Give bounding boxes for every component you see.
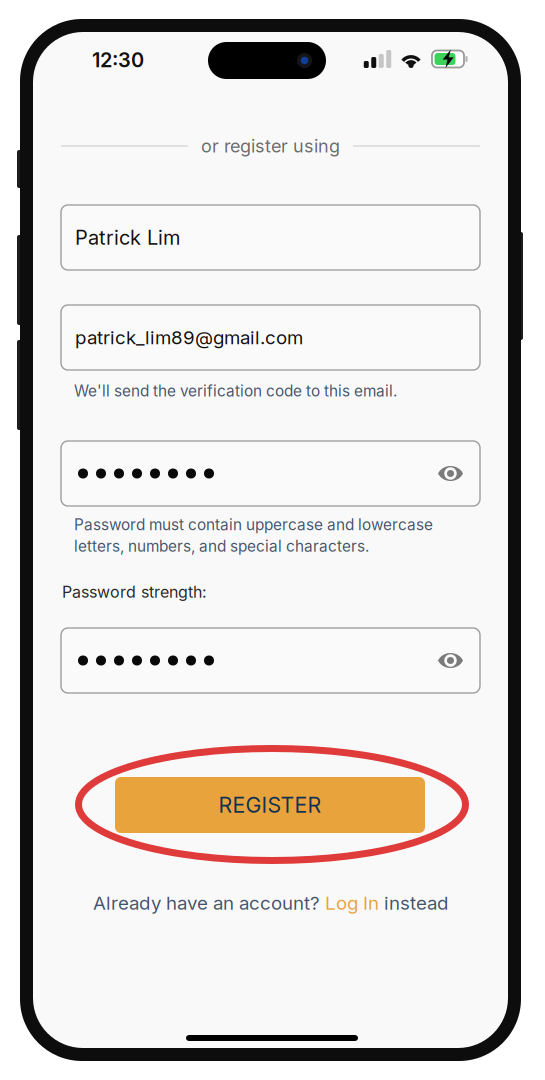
button[interactable]: Patrick Lim	[61, 205, 480, 270]
staticText: REGISTER	[218, 792, 321, 818]
staticText: or register using	[201, 135, 340, 157]
staticText: Password must contain uppercase and lowe…	[74, 515, 433, 534]
staticText: Patrick Lim	[75, 225, 180, 250]
staticText: letters, numbers, and special characters…	[74, 537, 369, 556]
staticText: 12:30	[92, 48, 144, 72]
button[interactable]: Log In	[325, 892, 379, 914]
button[interactable]	[61, 628, 480, 693]
button[interactable]: patrick_lim89@gmail.com	[61, 305, 480, 370]
staticText: Already have an account?	[93, 892, 325, 914]
button[interactable]	[61, 441, 480, 506]
staticText: instead	[379, 892, 448, 914]
staticText: We'll send the verification code to this…	[74, 382, 397, 400]
button[interactable]: REGISTER	[115, 777, 425, 833]
staticText: Log In	[325, 892, 379, 914]
staticText: patrick_lim89@gmail.com	[75, 326, 303, 349]
staticText: Password strength:	[62, 582, 207, 602]
